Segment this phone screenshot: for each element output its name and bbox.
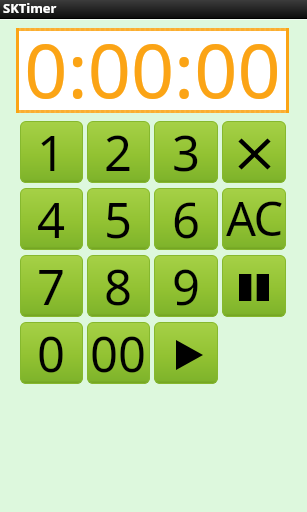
staticText: 9 [172, 255, 201, 315]
staticText: 6 [172, 188, 201, 248]
button[interactable]: 4 [20, 188, 83, 250]
staticText: 00 [90, 322, 147, 382]
button[interactable]: 3 [154, 121, 218, 183]
button[interactable]: 5 [87, 188, 150, 250]
staticText: 3 [172, 121, 201, 181]
button[interactable]: AC [222, 188, 286, 250]
button[interactable]: 7 [20, 255, 83, 317]
staticText: 0 [37, 322, 66, 382]
staticText: 8 [104, 255, 133, 315]
staticText: 5 [104, 188, 133, 248]
button[interactable]: Delete [222, 121, 286, 183]
staticText: 0:00:00 [24, 17, 281, 102]
button[interactable]: 0 [20, 322, 83, 384]
button[interactable]: 9 [154, 255, 218, 317]
button[interactable]: 00 [87, 322, 150, 384]
button[interactable]: 6 [154, 188, 218, 250]
button[interactable]: 2 [87, 121, 150, 183]
button[interactable]: Pause [222, 255, 286, 317]
staticText: SKTimer [3, 0, 57, 17]
staticText: 4 [37, 188, 66, 248]
staticText: 1 [37, 121, 66, 181]
button[interactable]: Start [154, 322, 218, 384]
staticText: 2 [104, 121, 133, 181]
button[interactable]: 8 [87, 255, 150, 317]
button[interactable]: 1 [20, 121, 83, 183]
staticText: 7 [37, 255, 66, 315]
staticText: AC [226, 188, 282, 248]
